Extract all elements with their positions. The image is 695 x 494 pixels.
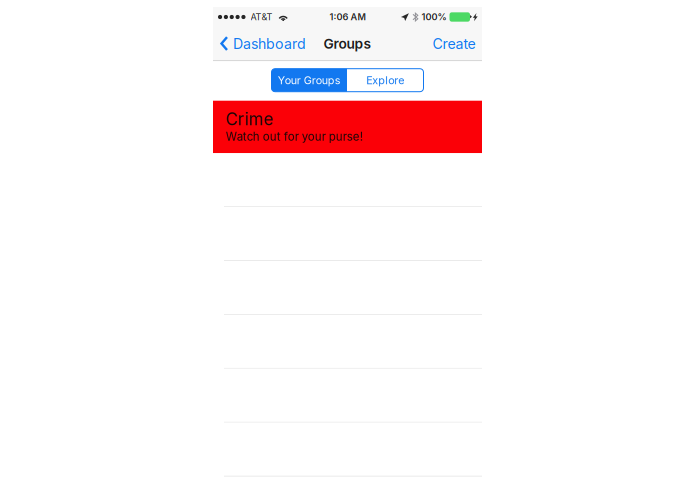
staticText: Your Groups bbox=[278, 74, 341, 87]
button[interactable]: Your Groups bbox=[271, 69, 347, 92]
button[interactable]: Dashboard bbox=[213, 27, 310, 60]
button[interactable]: Explore bbox=[347, 69, 423, 92]
staticText: Explore bbox=[366, 74, 404, 87]
staticText: Create bbox=[432, 35, 475, 52]
button[interactable]: Create bbox=[426, 27, 482, 60]
staticText: Crime bbox=[225, 109, 273, 129]
staticText: AT&T bbox=[250, 11, 272, 22]
staticText: 1:06 AM bbox=[329, 11, 365, 22]
staticText: Watch out for your purse! bbox=[225, 130, 362, 144]
button[interactable]: Crime bbox=[213, 101, 482, 153]
staticText: 100% bbox=[421, 11, 446, 22]
staticText: Dashboard bbox=[233, 35, 306, 52]
staticText: Groups bbox=[323, 35, 371, 52]
